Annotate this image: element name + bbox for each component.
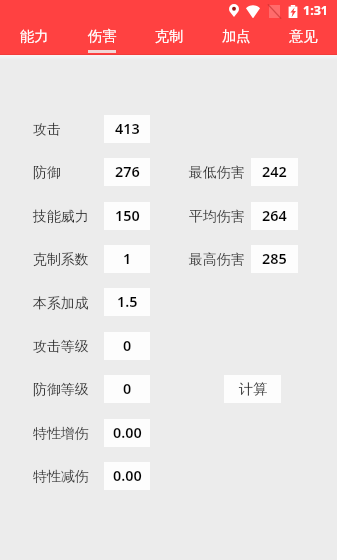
button[interactable]: 能力: [0, 20, 68, 55]
button[interactable]: 264: [251, 202, 298, 230]
staticText: 413: [115, 119, 140, 139]
staticText: 最低伤害: [189, 164, 245, 182]
staticText: 攻击等级: [33, 338, 89, 356]
staticText: 本系加成: [33, 295, 89, 313]
button[interactable]: 意见: [270, 20, 337, 55]
button[interactable]: 加点: [203, 20, 270, 55]
staticText: 加点: [222, 27, 251, 45]
staticText: 0: [123, 336, 132, 356]
staticText: 伤害: [88, 27, 117, 45]
staticText: 防御等级: [33, 381, 89, 399]
staticText: 意见: [289, 27, 318, 45]
staticText: 264: [262, 206, 287, 226]
other: Mobile signal: [269, 5, 280, 18]
staticText: 特性增伤: [33, 425, 89, 443]
button[interactable]: 0.00: [104, 419, 150, 447]
button[interactable]: 242: [251, 158, 298, 186]
button[interactable]: 1: [104, 245, 150, 273]
staticText: 技能威力: [33, 208, 89, 226]
staticText: 防御: [33, 164, 61, 182]
staticText: 285: [262, 249, 287, 269]
button[interactable]: 413: [104, 115, 150, 143]
button[interactable]: 计算: [224, 375, 281, 403]
other: Battery charging: [288, 5, 298, 18]
button[interactable]: 0.00: [104, 462, 150, 490]
staticText: 平均伤害: [189, 208, 245, 226]
staticText: 计算: [239, 380, 268, 398]
staticText: 1:31: [303, 2, 328, 19]
button[interactable]: 1.5: [104, 288, 150, 316]
staticText: 1.5: [117, 292, 138, 312]
staticText: 克制系数: [33, 251, 89, 269]
other: Wi-Fi: [245, 4, 261, 18]
button[interactable]: 285: [251, 245, 298, 273]
staticText: 克制: [155, 27, 184, 45]
staticText: 0.00: [113, 423, 142, 443]
staticText: 0.00: [113, 466, 142, 486]
staticText: 242: [262, 162, 287, 182]
staticText: 攻击: [33, 121, 61, 139]
staticText: 最高伤害: [189, 251, 245, 269]
button[interactable]: 克制: [136, 20, 203, 55]
button[interactable]: 伤害: [68, 20, 136, 55]
staticText: 1: [123, 249, 132, 269]
button[interactable]: 0: [104, 375, 150, 403]
staticText: 150: [115, 206, 140, 226]
staticText: 能力: [20, 27, 49, 45]
other: Location: [229, 4, 239, 17]
button[interactable]: 276: [104, 158, 150, 186]
button[interactable]: 150: [104, 202, 150, 230]
staticText: 276: [115, 162, 140, 182]
staticText: 特性减伤: [33, 468, 89, 486]
staticText: 0: [123, 379, 132, 399]
button[interactable]: 0: [104, 332, 150, 360]
